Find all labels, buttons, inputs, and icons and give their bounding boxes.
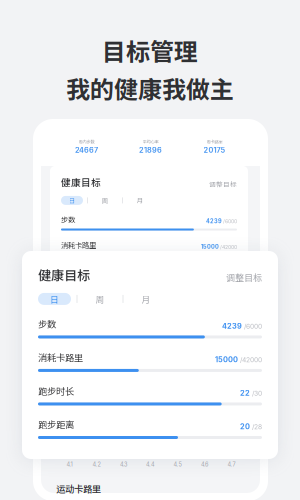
staticText: 运动卡路里	[56, 482, 101, 495]
staticText: 跑步距离	[38, 417, 74, 431]
staticText: 15000	[201, 243, 219, 250]
staticText: 4.5	[173, 461, 181, 468]
staticText: 周内步数	[78, 138, 94, 145]
staticText: /28	[250, 423, 262, 431]
staticText: 我的健康我做主	[66, 71, 234, 106]
staticText: 消耗卡路里	[61, 239, 96, 250]
staticText: 健康目标	[61, 175, 101, 189]
staticText: 平均心率	[142, 138, 158, 145]
staticText: 周	[101, 196, 108, 205]
staticText: 4239	[206, 218, 222, 224]
staticText: 4239	[222, 322, 242, 330]
staticText: 20175	[203, 146, 225, 155]
staticText: 4.6	[201, 461, 208, 468]
button[interactable]: 周	[92, 196, 118, 205]
staticText: 4.3	[120, 461, 127, 468]
staticText: 调整目标	[209, 179, 237, 189]
staticText: 目标管理	[102, 33, 198, 68]
staticText: 22	[240, 389, 250, 397]
staticText: 日	[50, 293, 59, 305]
staticText: 步数	[38, 317, 56, 330]
button[interactable]: 月	[127, 196, 153, 205]
staticText: 4.1	[66, 461, 72, 468]
staticText: 15000	[215, 355, 238, 364]
button[interactable]: 月	[129, 293, 163, 305]
staticText: 跑步时长	[38, 384, 74, 397]
staticText: 调整目标	[226, 271, 262, 284]
staticText: 健康目标	[38, 265, 90, 284]
staticText: 月	[136, 196, 143, 205]
staticText: 月	[141, 293, 150, 305]
staticText: 4.4	[146, 461, 155, 468]
staticText: /6000	[242, 322, 262, 330]
staticText: 步数	[61, 214, 75, 224]
button[interactable]: 调整目标	[226, 271, 262, 284]
staticText: 21896	[139, 146, 162, 155]
staticText: 20	[240, 422, 250, 431]
staticText: 周卡路里	[206, 138, 222, 145]
button[interactable]: 日	[61, 196, 83, 205]
button[interactable]: 日	[38, 293, 71, 305]
button[interactable]: 周	[83, 293, 117, 305]
staticText: /30	[250, 389, 262, 397]
staticText: /42000	[238, 356, 262, 364]
staticText: 消耗卡路里	[38, 350, 83, 364]
staticText: 日	[68, 196, 75, 205]
staticText: 24667	[75, 146, 98, 155]
staticText: /42000	[219, 244, 237, 250]
staticText: 4.2	[92, 461, 100, 468]
staticText: /6000	[222, 218, 237, 224]
staticText: 4.7	[227, 461, 235, 468]
staticText: 周	[95, 293, 104, 305]
